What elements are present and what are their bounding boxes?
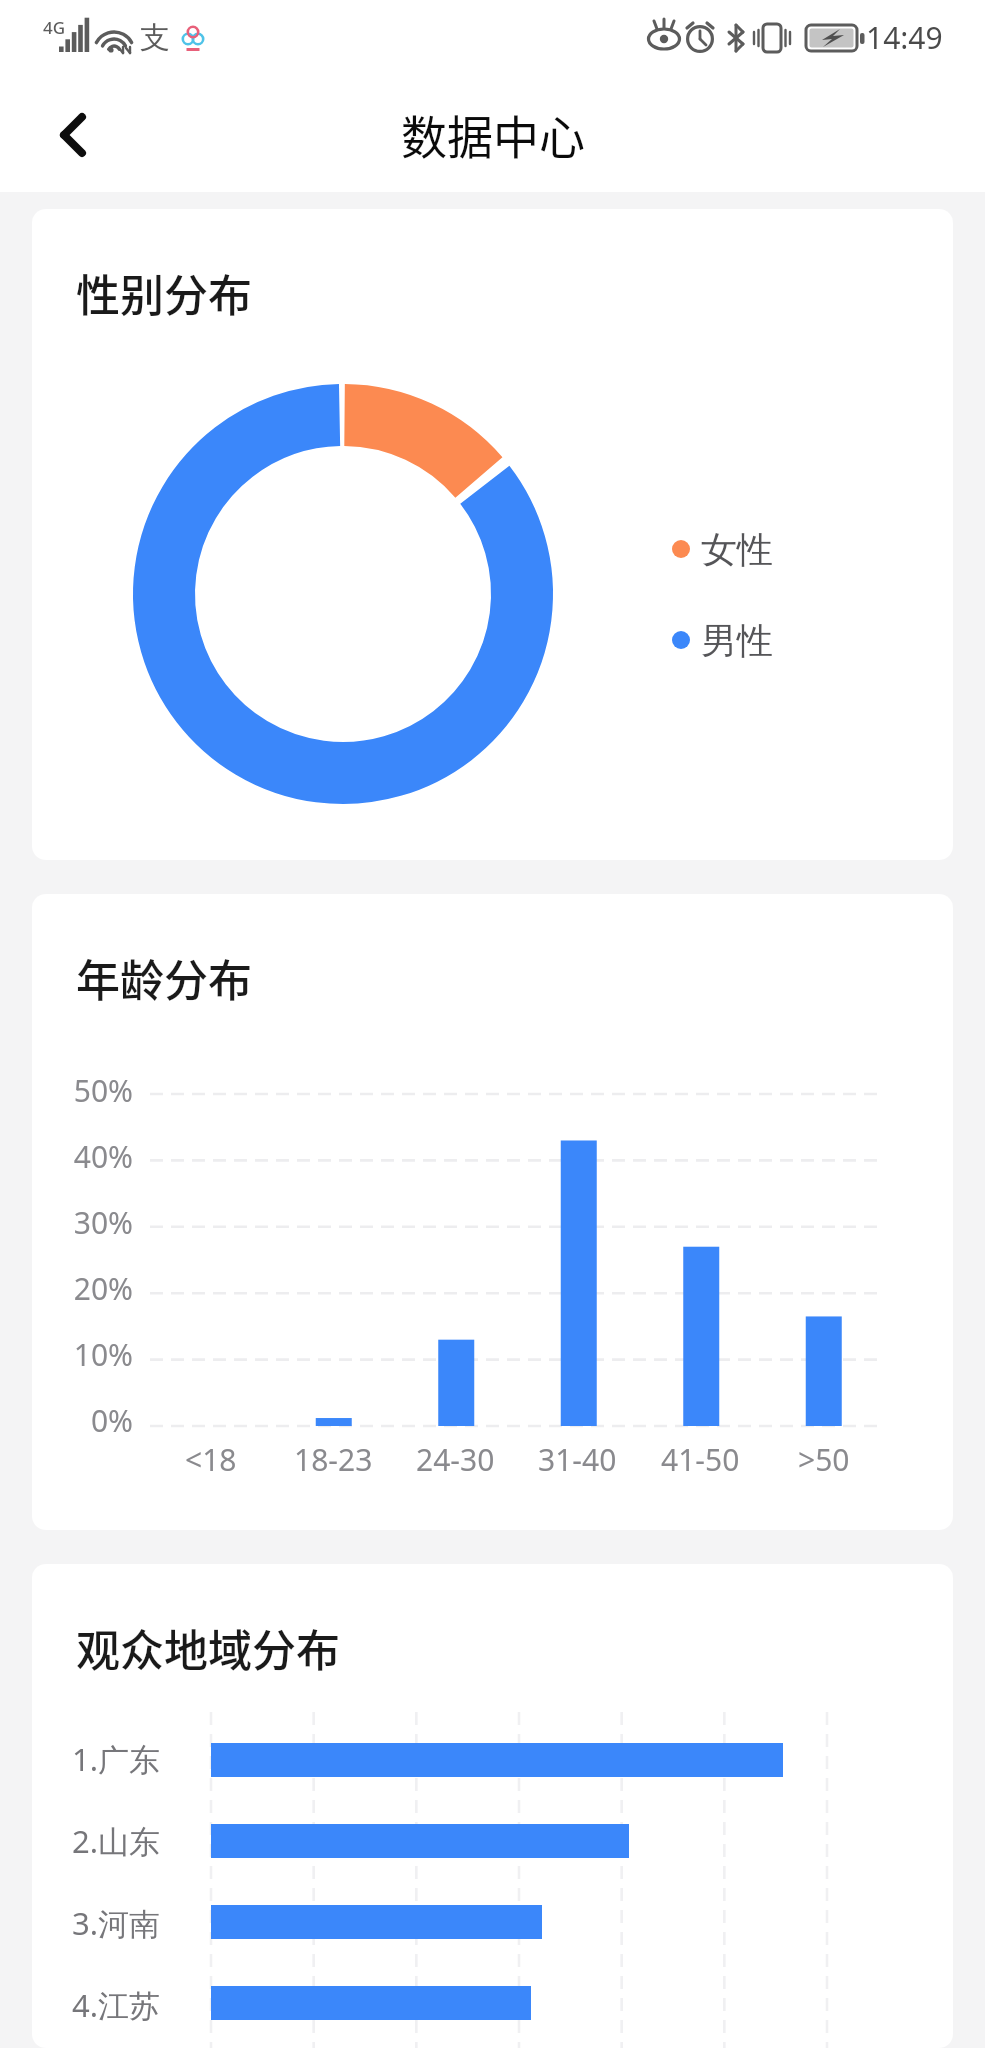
staticText: 18-23 <box>294 1439 373 1480</box>
staticText: 10% <box>73 1334 133 1375</box>
staticText: 女性 <box>701 527 773 572</box>
staticText: 14:49 <box>866 17 943 58</box>
staticText: 数据中心 <box>401 101 585 168</box>
button[interactable]: 女性 <box>672 523 773 575</box>
staticText: <18 <box>185 1439 237 1480</box>
staticText: 支 <box>140 19 170 57</box>
staticText: 31-40 <box>538 1439 617 1480</box>
staticText: 2.山东 <box>72 1820 161 1862</box>
staticText: 性别分布 <box>76 261 252 325</box>
staticText: 40% <box>73 1136 133 1177</box>
staticText: 4G <box>43 16 66 39</box>
staticText: 观众地域分布 <box>76 1616 340 1680</box>
button[interactable]: Back <box>0 92 100 192</box>
staticText: 4.江苏 <box>72 1984 161 2026</box>
staticText: 30% <box>73 1202 133 1243</box>
staticText: 41-50 <box>661 1439 740 1480</box>
staticText: 0% <box>90 1400 133 1441</box>
staticText: 50% <box>73 1070 133 1111</box>
staticText: 24-30 <box>416 1439 495 1480</box>
staticText: 年龄分布 <box>76 946 252 1010</box>
staticText: 男性 <box>701 618 773 663</box>
staticText: 3.河南 <box>72 1902 161 1944</box>
button[interactable]: 男性 <box>672 614 773 666</box>
staticText: 1.广东 <box>72 1738 161 1780</box>
staticText: >50 <box>798 1439 850 1480</box>
staticText: 20% <box>73 1268 133 1309</box>
